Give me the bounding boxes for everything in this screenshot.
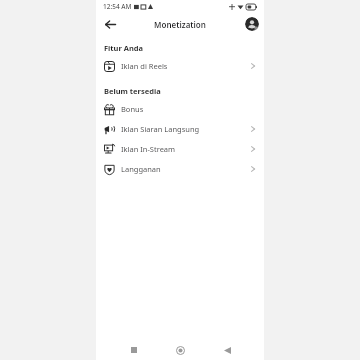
staticText: Iklan di Reels	[121, 61, 249, 71]
button[interactable]: Iklan Siaran Langsung	[96, 119, 264, 139]
staticText: Langganan	[121, 164, 249, 174]
button[interactable]: Profile	[245, 17, 259, 31]
button[interactable]: Langganan	[96, 159, 264, 179]
staticText: Belum tersedia	[104, 86, 161, 96]
button[interactable]: Back	[218, 341, 236, 359]
staticText: Iklan Siaran Langsung	[121, 124, 249, 134]
staticText: Monetization	[154, 19, 206, 30]
button[interactable]: Bonus	[96, 99, 264, 119]
button[interactable]: Iklan di Reels	[96, 56, 264, 76]
button[interactable]: Back	[101, 15, 119, 33]
button[interactable]: Iklan In-Stream	[96, 139, 264, 159]
staticText: Iklan In-Stream	[121, 144, 249, 154]
button[interactable]: Recent apps	[125, 341, 143, 359]
staticText: 12:54 AM	[103, 2, 132, 11]
staticText: Fitur Anda	[104, 43, 144, 53]
button[interactable]: Home	[171, 341, 189, 359]
staticText: Bonus	[121, 104, 257, 114]
